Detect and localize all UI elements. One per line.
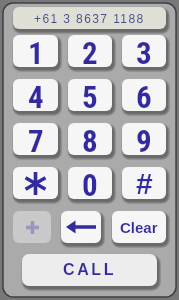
button[interactable]: 6 [122,79,166,111]
staticText: Clear [120,219,158,236]
staticText: 8 [82,123,98,155]
button[interactable]: Add pause [13,211,51,243]
staticText: # [136,167,153,199]
staticText: 6 [136,79,152,111]
button[interactable]: 9 [122,123,166,155]
staticText: 3 [136,35,152,67]
staticText: +61 3 8637 1188 [34,12,145,25]
button[interactable]: +61 3 8637 1188 [13,7,166,29]
button[interactable]: 3 [122,35,166,67]
staticText: 7 [28,123,44,155]
button[interactable]: 5 [68,79,112,111]
button[interactable]: Backspace [61,211,101,243]
button[interactable]: 8 [68,123,112,155]
staticText: CALL [63,261,117,279]
staticText: 0 [82,167,98,199]
button[interactable]: CALL [22,254,157,286]
staticText: 2 [82,35,98,67]
button[interactable]: 2 [68,35,112,67]
staticText: 5 [82,79,98,111]
button[interactable]: Clear [112,211,166,243]
button[interactable]: 0 [68,167,112,199]
staticText: 4 [28,79,44,111]
button[interactable]: 4 [13,79,58,111]
button[interactable]: Star [13,167,58,199]
staticText: 1 [28,35,44,67]
button[interactable]: 1 [13,35,58,67]
button[interactable]: # [122,167,166,199]
button[interactable]: 7 [13,123,58,155]
staticText: 9 [136,123,152,155]
